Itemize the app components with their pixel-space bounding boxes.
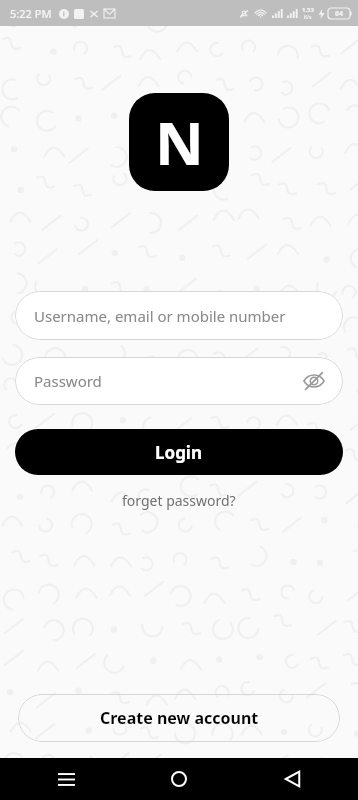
staticText: 64 <box>335 9 344 19</box>
staticText: Login <box>155 441 203 464</box>
staticText: Create new account <box>100 707 259 729</box>
button[interactable]: forget password? <box>114 488 244 513</box>
staticText: K/s <box>304 14 312 21</box>
button[interactable]: Create new account <box>18 694 340 742</box>
button[interactable]: Show password <box>297 364 331 398</box>
button[interactable]: Login <box>15 429 343 475</box>
staticText: forget password? <box>122 491 236 510</box>
button[interactable]: Home <box>159 759 199 799</box>
button[interactable]: Password <box>15 357 343 405</box>
staticText: Username, email or mobile number <box>34 306 286 326</box>
button[interactable]: Back <box>272 759 312 799</box>
button[interactable]: Username, email or mobile number <box>15 291 343 340</box>
staticText: Password <box>34 371 102 391</box>
button[interactable]: Recent apps <box>46 759 86 799</box>
staticText: N <box>155 101 204 183</box>
staticText: 1.53 <box>302 6 314 14</box>
staticText: 5:22 PM <box>10 6 52 21</box>
